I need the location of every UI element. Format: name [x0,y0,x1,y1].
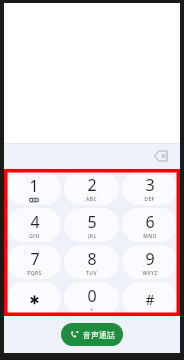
staticText: 5 [87,211,97,233]
staticText: 2 [87,174,97,196]
button[interactable]: 5 [64,208,119,242]
button[interactable]: 3 [122,172,177,205]
button[interactable]: 9 [122,245,177,279]
staticText: 4 [30,211,40,233]
staticText: + [90,307,94,314]
staticText: 0 [87,285,97,307]
button[interactable]: 8 [64,245,119,279]
staticText: 6 [145,211,155,233]
staticText: MNO [143,233,157,240]
staticText: GHI [29,233,40,240]
staticText: # [145,290,155,309]
button[interactable]: # [122,282,177,316]
staticText: ABC [86,196,97,203]
staticText: 9 [145,248,155,270]
staticText: 7 [30,248,40,270]
button[interactable]: 音声通話 [61,323,123,346]
staticText: DEF [144,196,155,203]
staticText: 1 [29,175,39,197]
staticText: 3 [145,174,155,196]
staticText: 音声通話 [83,330,115,340]
button[interactable]: 2 [64,172,119,205]
staticText: PQRS [27,270,42,277]
button[interactable]: 1 [7,172,61,205]
staticText: WXYZ [142,270,158,277]
staticText: TUV [86,270,97,277]
button[interactable]: 7 [7,245,61,279]
button[interactable]: Backspace [150,147,172,165]
staticText: 8 [87,248,97,270]
button[interactable] [7,282,61,316]
button[interactable]: 4 [7,208,61,242]
staticText: JKL [88,233,97,240]
button[interactable]: 0 [64,282,119,316]
button[interactable]: 6 [122,208,177,242]
